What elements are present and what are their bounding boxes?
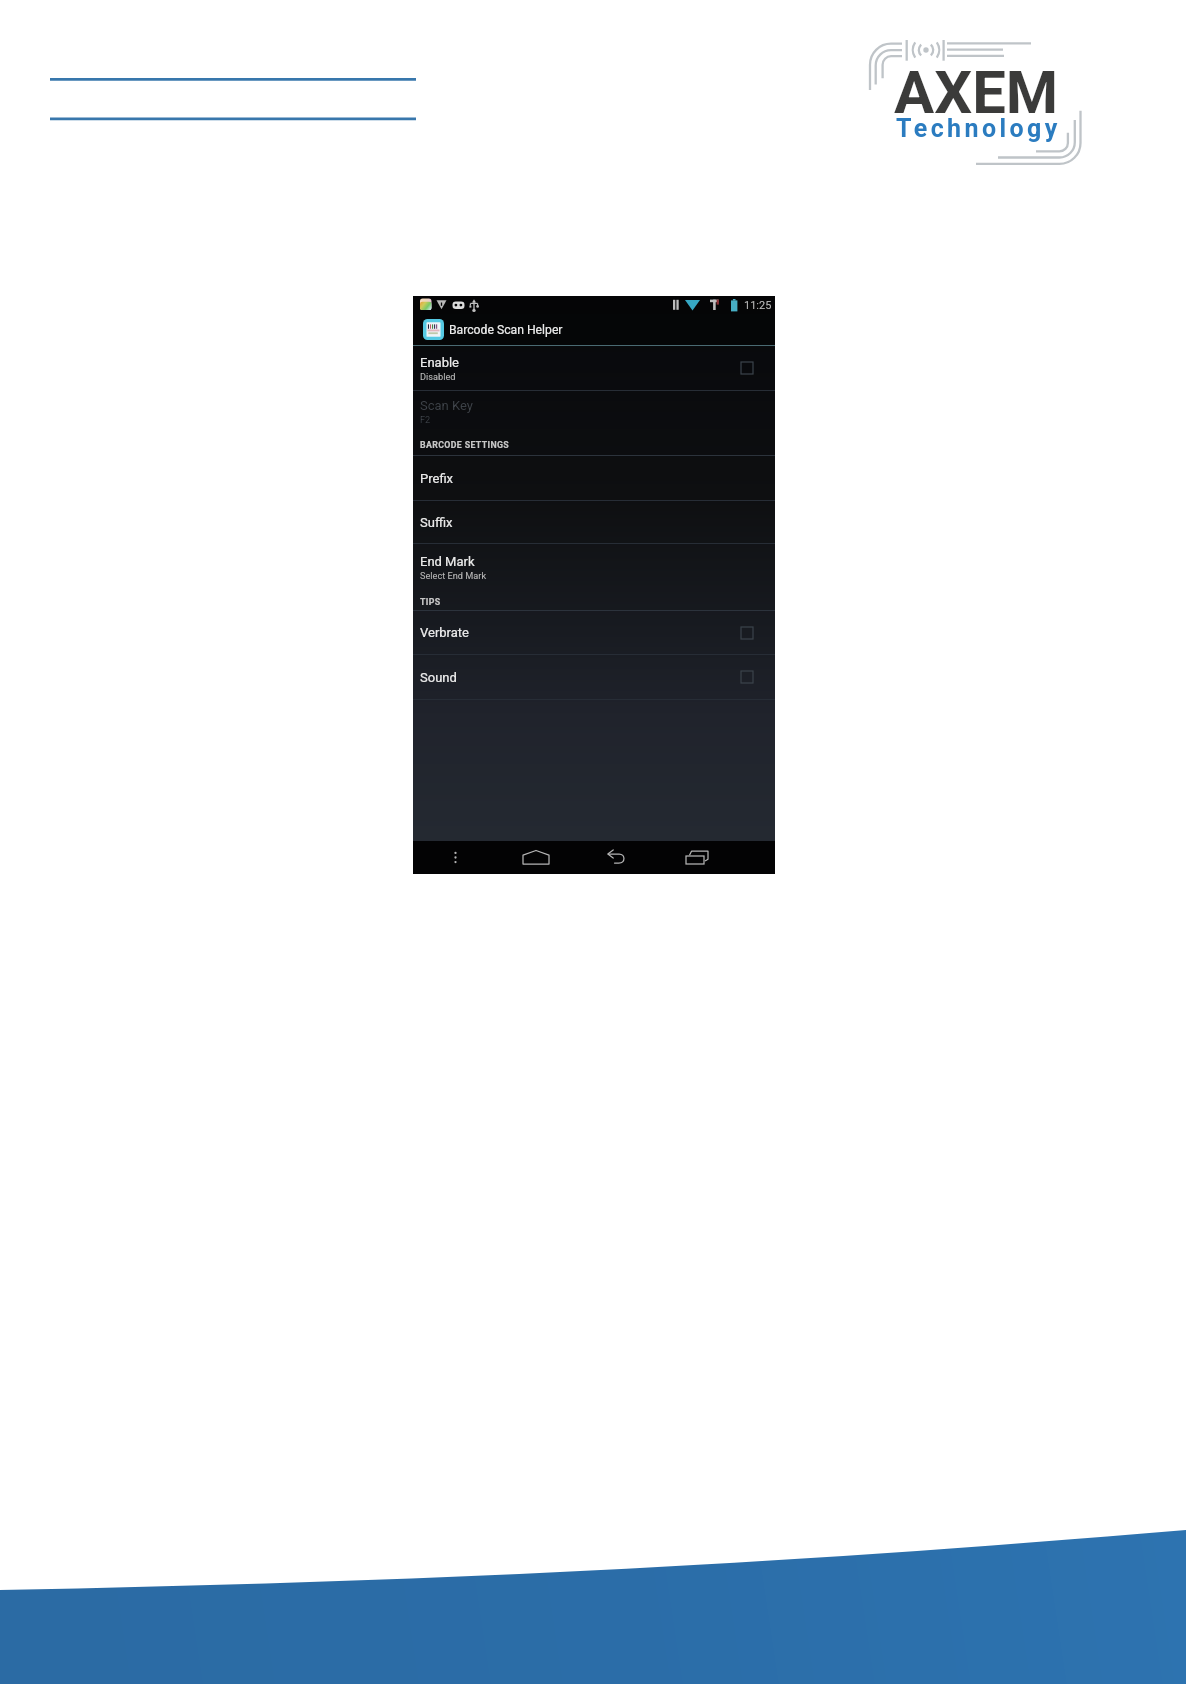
button[interactable]: Prefix — [413, 456, 775, 501]
staticText: Prefix — [420, 471, 454, 486]
button[interactable]: Suffix — [413, 501, 775, 544]
staticText: Verbrate — [420, 625, 469, 640]
staticText: Sound — [420, 670, 457, 685]
button[interactable]: Toggle Verbrate — [741, 627, 753, 639]
staticText: Technology — [896, 114, 1061, 143]
button[interactable]: Scan Key — [413, 391, 775, 431]
staticText: Enable — [420, 355, 459, 370]
button[interactable]: End Mark — [413, 544, 775, 590]
button[interactable]: Sound — [413, 655, 775, 700]
button[interactable]: Toggle Sound — [741, 671, 753, 683]
button[interactable]: Enable — [413, 346, 775, 391]
staticText: Disabled — [420, 371, 456, 382]
staticText: Select End Mark — [420, 570, 487, 581]
staticText: F2 — [420, 414, 431, 425]
button[interactable]: Back — [577, 841, 637, 874]
staticText: 11:25 — [744, 299, 772, 312]
button[interactable]: Barcode Scan Helper — [413, 314, 775, 345]
button[interactable]: Home — [496, 841, 556, 874]
staticText: BARCODE SETTINGS — [420, 440, 510, 450]
staticText: Suffix — [420, 515, 453, 530]
button[interactable]: Menu — [435, 841, 476, 874]
staticText: Scan Key — [420, 398, 473, 413]
staticText: TIPS — [420, 597, 441, 607]
button[interactable]: Verbrate — [413, 611, 775, 655]
button[interactable]: Recent apps — [657, 841, 717, 874]
button[interactable]: Toggle Enable — [741, 362, 753, 374]
staticText: Barcode Scan Helper — [449, 323, 563, 337]
staticText: AXEM — [894, 58, 1059, 128]
staticText: End Mark — [420, 554, 475, 569]
